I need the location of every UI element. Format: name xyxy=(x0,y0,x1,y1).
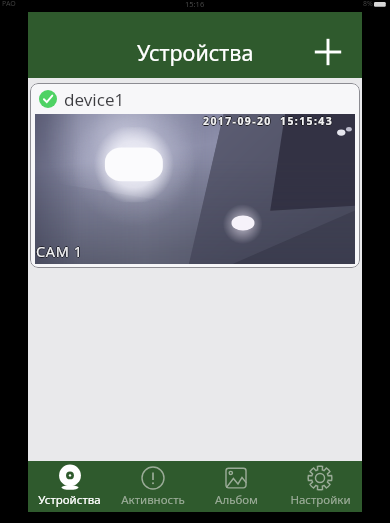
button[interactable]: Настройки xyxy=(278,461,362,512)
staticText: Настройки xyxy=(290,492,351,508)
staticText: 15:16 xyxy=(185,0,205,9)
staticText: 2017-09-20 15:15:43 xyxy=(202,114,333,128)
staticText: 2017-09-20 15:15:43 xyxy=(203,114,334,127)
staticText: 2017-09-20 15:15:43 xyxy=(203,114,334,128)
staticText: Альбом xyxy=(215,492,258,508)
staticText: CAM 1 xyxy=(36,241,83,261)
staticText: CAM 1 xyxy=(36,240,83,260)
staticText: PAO xyxy=(2,0,16,9)
staticText: 2017-09-20 15:15:43 xyxy=(203,115,334,129)
staticText: 2017-09-20 15:15:43 xyxy=(204,114,335,128)
staticText: CAM 1 xyxy=(35,241,82,261)
button[interactable]: device1 xyxy=(30,83,360,268)
staticText: Устройства xyxy=(137,38,254,67)
staticText: 8% xyxy=(363,0,373,9)
staticText: Активность xyxy=(121,492,185,508)
staticText: CAM 1 xyxy=(37,241,84,261)
staticText: device1 xyxy=(64,88,125,111)
button[interactable]: Активность xyxy=(111,461,194,512)
staticText: CAM 1 xyxy=(36,242,83,262)
staticText: Устройства xyxy=(38,492,101,508)
button[interactable]: Альбом xyxy=(194,461,278,512)
button[interactable]: Устройства xyxy=(28,461,111,512)
button[interactable]: Add device xyxy=(309,33,347,71)
